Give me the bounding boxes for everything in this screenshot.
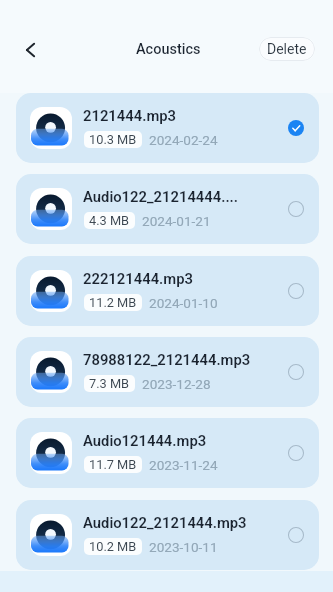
staticText: 2121444.mp3 [83, 107, 177, 124]
staticText: 11.7 MB [89, 457, 137, 472]
staticText: Audio122_2121444.mp3 [83, 514, 247, 531]
staticText: Acoustics [136, 41, 201, 58]
staticText: 78988122_2121444.mp3 [83, 351, 251, 368]
staticText: Delete [267, 41, 307, 57]
staticText: 11.2 MB [89, 295, 137, 310]
staticText: 10.2 MB [89, 539, 137, 554]
staticText: Audio121444.mp3 [83, 432, 207, 449]
button[interactable]: 78988122_2121444.mp3 [16, 337, 319, 407]
staticText: 4.3 MB [89, 213, 130, 228]
button[interactable]: Back [14, 34, 46, 66]
staticText: 2023-11-24 [149, 457, 218, 473]
staticText: 10.3 MB [89, 132, 137, 147]
button[interactable]: Select [281, 194, 311, 224]
button[interactable]: 222121444.mp3 [16, 256, 319, 326]
staticText: 222121444.mp3 [83, 270, 193, 287]
staticText: 2024-01-21 [142, 213, 211, 229]
button[interactable]: Select [281, 520, 311, 550]
staticText: 7.3 MB [89, 376, 130, 391]
staticText: 2024-01-10 [149, 295, 218, 311]
button[interactable]: Audio122_21214444.... [16, 174, 319, 244]
button[interactable]: Audio122_2121444.mp3 [16, 500, 319, 570]
button[interactable]: Audio121444.mp3 [16, 418, 319, 488]
button[interactable]: Delete [259, 37, 315, 61]
staticText: 2023-12-28 [142, 376, 211, 392]
staticText: 2023-10-11 [149, 539, 218, 555]
button[interactable]: Selected [281, 113, 311, 143]
button[interactable]: Select [281, 438, 311, 468]
button[interactable]: Select [281, 357, 311, 387]
button[interactable]: Select [281, 276, 311, 306]
staticText: 2024-02-24 [149, 132, 218, 148]
staticText: Audio122_21214444.... [83, 188, 239, 205]
button[interactable]: 2121444.mp3 [16, 93, 319, 163]
